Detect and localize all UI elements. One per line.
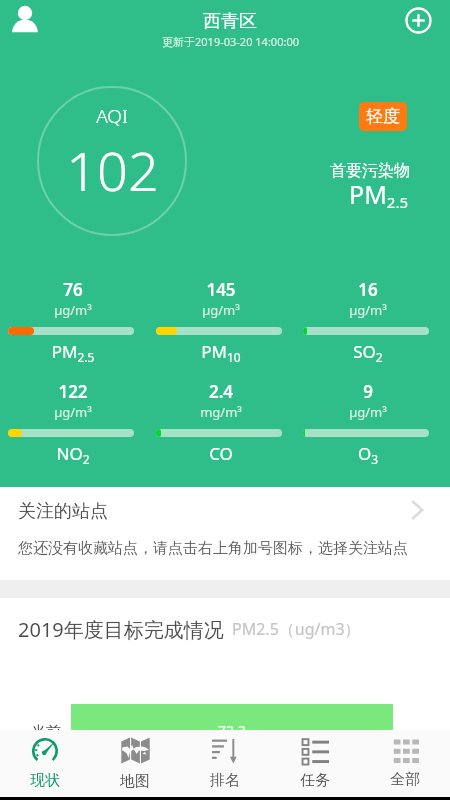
- staticText: 地图: [120, 772, 150, 791]
- button[interactable]: 关注的站点: [0, 487, 450, 580]
- staticText: CO: [158, 442, 284, 465]
- staticText: 122: [10, 380, 136, 403]
- staticText: 现状: [30, 771, 60, 790]
- button[interactable]: 轻度: [359, 102, 407, 131]
- button[interactable]: 全部: [360, 730, 450, 797]
- staticText: mg/m³: [158, 403, 284, 421]
- staticText: SO2: [305, 340, 431, 366]
- staticText: 更新于2019-03-20 14:00:00: [162, 34, 299, 49]
- staticText: 西青区: [203, 10, 257, 33]
- staticText: µg/m³: [305, 403, 431, 421]
- staticText: 任务: [300, 771, 330, 790]
- staticText: µg/m³: [305, 301, 431, 319]
- staticText: PM10: [158, 340, 284, 366]
- button[interactable]: 地图: [90, 730, 180, 797]
- staticText: PM2.5: [349, 177, 408, 213]
- staticText: µg/m³: [158, 301, 284, 319]
- button[interactable]: 任务: [270, 730, 360, 797]
- staticText: PM2.5: [10, 340, 136, 366]
- button[interactable]: Add station: [403, 5, 434, 36]
- staticText: 9: [305, 380, 431, 403]
- staticText: AQI: [96, 103, 128, 129]
- staticText: O3: [305, 442, 431, 468]
- button[interactable]: 排名: [180, 730, 270, 797]
- staticText: 排名: [210, 771, 240, 790]
- button[interactable]: 现状: [0, 730, 90, 797]
- staticText: 全部: [390, 770, 420, 789]
- staticText: 2.4: [158, 380, 284, 403]
- staticText: µg/m³: [10, 403, 136, 421]
- staticText: 关注的站点: [18, 500, 108, 523]
- staticText: 2019年度目标完成情况: [18, 616, 224, 643]
- staticText: NO2: [10, 442, 136, 468]
- staticText: 102: [66, 133, 159, 207]
- staticText: PM2.5（ug/m3）: [232, 618, 361, 640]
- staticText: 首要污染物: [330, 161, 410, 181]
- button[interactable]: Profile: [9, 1, 41, 33]
- staticText: 72.3: [218, 721, 246, 740]
- staticText: 当前: [31, 723, 61, 742]
- staticText: 轻度: [366, 106, 400, 127]
- staticText: 16: [305, 278, 431, 301]
- other: Open stations: [405, 495, 435, 525]
- staticText: 76: [10, 278, 136, 301]
- staticText: µg/m³: [10, 301, 136, 319]
- staticText: 您还没有收藏站点，请点击右上角加号图标，选择关注站点: [18, 539, 408, 558]
- staticText: 145: [158, 278, 284, 301]
